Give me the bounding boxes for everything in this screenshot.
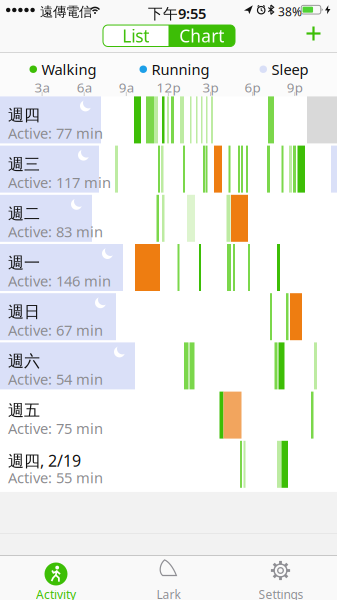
staticText: Active: 55 min	[8, 468, 103, 487]
button[interactable]: 週六	[0, 342, 337, 389]
staticText: Lark	[156, 586, 180, 600]
button[interactable]: 週三	[0, 146, 337, 193]
staticText: Chart	[179, 24, 224, 47]
staticText: Active: 54 min	[8, 369, 103, 389]
staticText: Running	[151, 59, 209, 79]
button[interactable]: Activity	[0, 555, 112, 599]
staticText: 3a	[35, 78, 50, 96]
staticText: Active: 67 min	[8, 320, 103, 340]
staticText: 週四, 2/19	[8, 450, 81, 471]
staticText: 38%	[278, 4, 302, 19]
button[interactable]: Settings	[225, 555, 337, 599]
button[interactable]: List	[103, 25, 168, 46]
staticText: 12p	[156, 78, 180, 96]
staticText: 週三	[8, 155, 40, 174]
button[interactable]: 週一	[0, 244, 337, 291]
staticText: Settings	[258, 586, 303, 600]
staticText: Sleep	[271, 59, 308, 79]
staticText: 遠傳電信	[40, 3, 92, 20]
staticText: Active: 75 min	[8, 419, 103, 438]
button[interactable]: Add	[298, 18, 328, 48]
staticText: 週二	[8, 204, 40, 223]
button[interactable]: 週日	[0, 293, 337, 340]
staticText: List	[122, 24, 149, 47]
staticText: Active: 83 min	[8, 222, 103, 241]
button[interactable]: Chart	[168, 25, 235, 46]
staticText: 週四	[8, 105, 40, 125]
staticText: Walking	[41, 59, 96, 79]
staticText: 6a	[77, 78, 92, 96]
staticText: 週一	[8, 253, 40, 273]
staticText: 週六	[8, 351, 40, 371]
staticText: 6p	[245, 78, 261, 96]
staticText: 週日	[8, 302, 40, 322]
staticText: Activity	[36, 586, 76, 600]
staticText: 9a	[119, 78, 134, 96]
staticText: Active: 117 min	[8, 173, 111, 192]
button[interactable]: 週五	[0, 392, 337, 439]
staticText: 週五	[8, 401, 40, 420]
staticText: Active: 146 min	[8, 271, 111, 290]
button[interactable]: 週四	[0, 96, 337, 143]
button[interactable]: Lark	[112, 555, 224, 599]
staticText: Active: 77 min	[8, 123, 103, 143]
staticText: 下午9:55	[148, 3, 206, 23]
button[interactable]: 週二	[0, 195, 337, 242]
staticText: 9p	[287, 78, 303, 96]
button[interactable]: 週四, 2/19	[0, 441, 337, 488]
staticText: 3p	[202, 78, 218, 96]
